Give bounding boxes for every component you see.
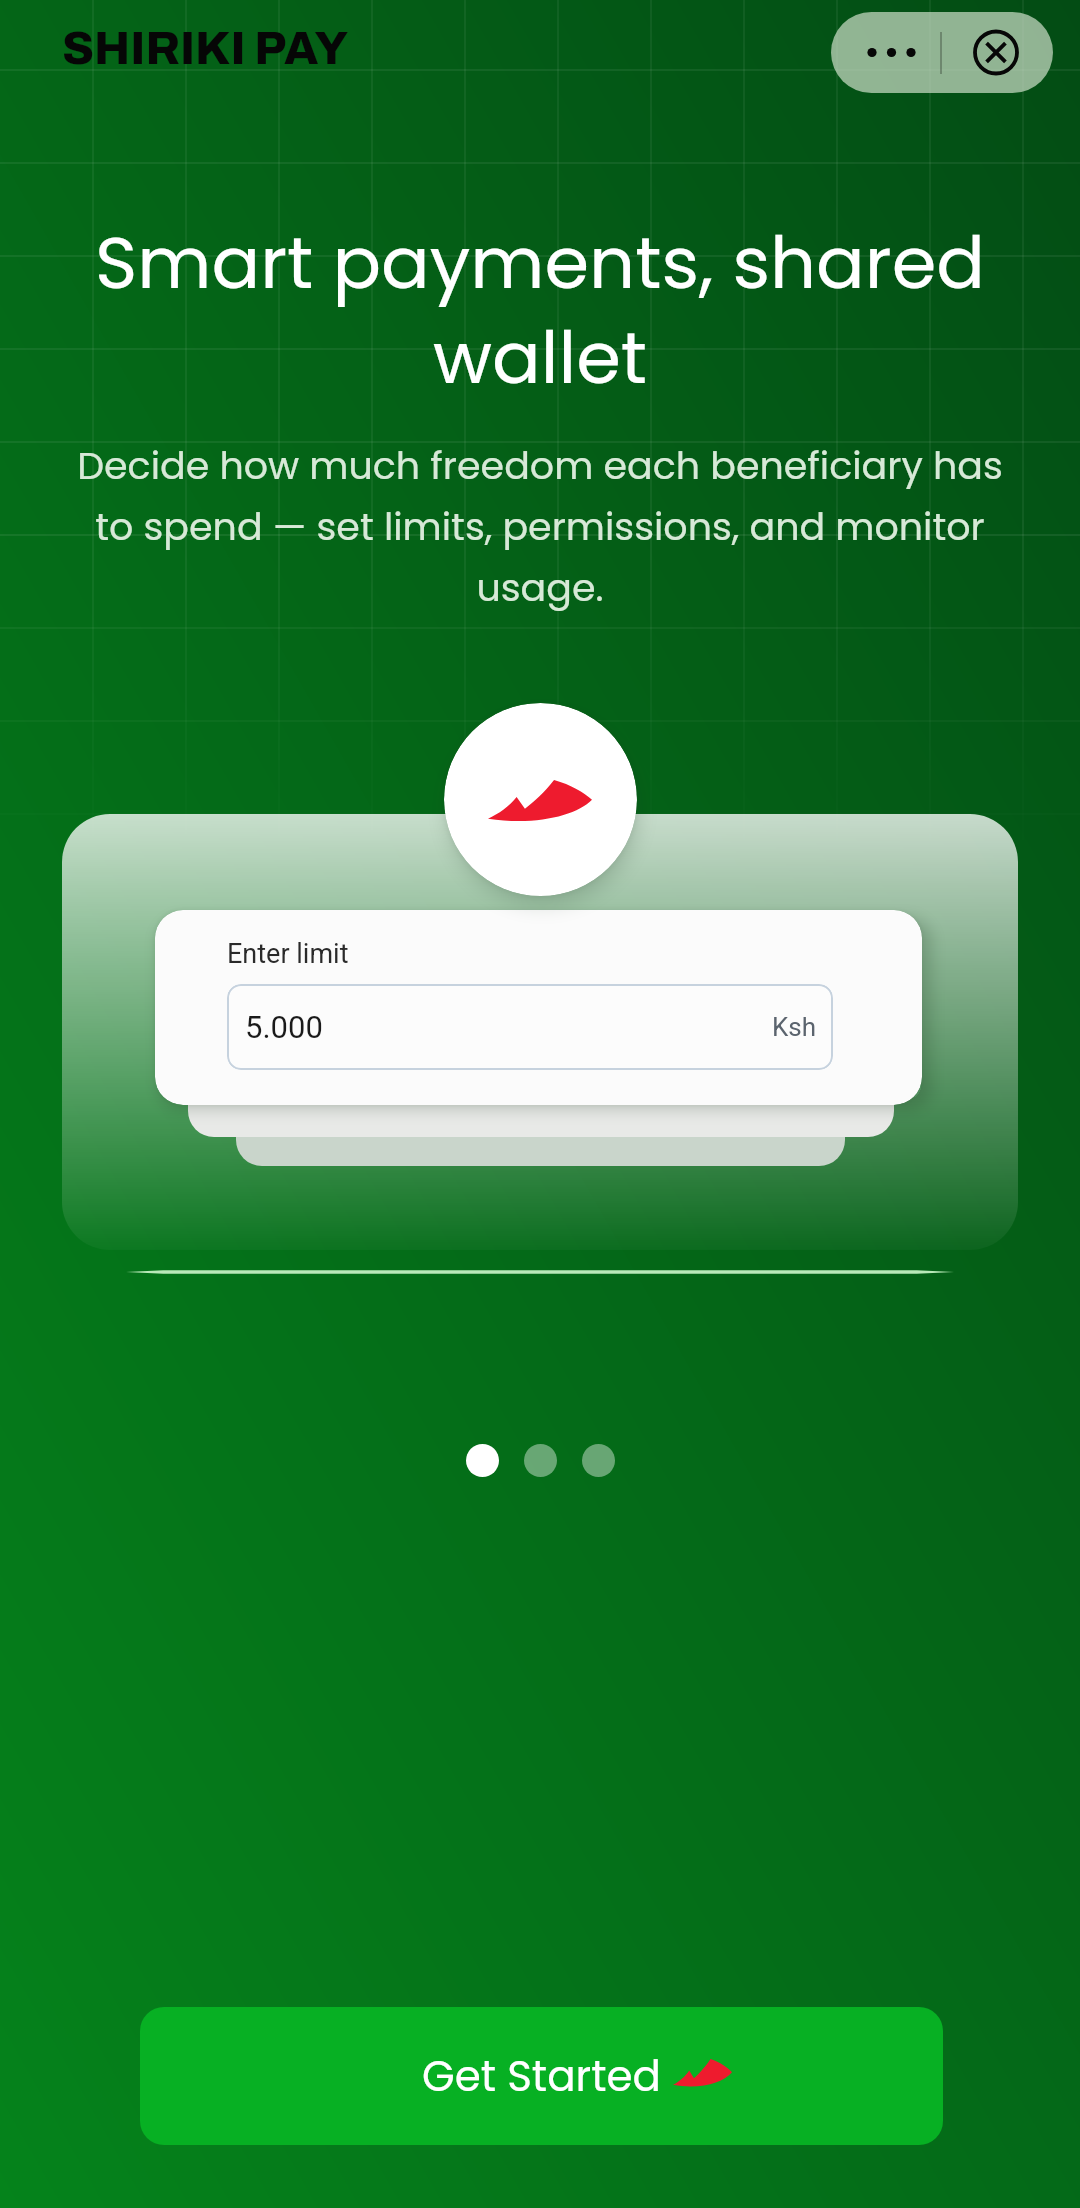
staticText: 5.000	[245, 1009, 323, 1045]
button[interactable]: Close	[940, 12, 1053, 93]
button[interactable]: Get Started	[140, 2007, 943, 2145]
staticText: Ksh	[772, 1012, 817, 1042]
staticText: Decide how much freedom each beneficiary…	[60, 439, 1020, 614]
button[interactable]: Page 3	[582, 1444, 615, 1477]
button[interactable]: Page 2	[524, 1444, 557, 1477]
button[interactable]: More options	[831, 12, 940, 93]
staticText: Get Started	[422, 2047, 661, 2106]
button[interactable]: 5.000	[227, 984, 833, 1070]
button[interactable]: SHIRIKI PAY	[58, 20, 353, 78]
staticText: Enter limit	[227, 938, 349, 970]
staticText: Smart payments, shared wallet	[40, 212, 1040, 408]
staticText: SHIRIKI PAY	[62, 24, 349, 74]
button[interactable]: Page 1	[466, 1444, 499, 1477]
